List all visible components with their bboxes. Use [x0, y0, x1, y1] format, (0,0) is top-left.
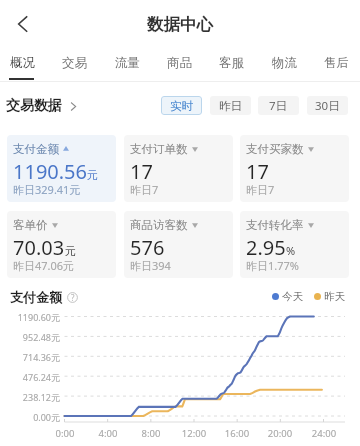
button[interactable]: 支付转化率 — [240, 211, 349, 278]
button[interactable]: 支付金额 — [10, 289, 78, 305]
button[interactable]: 客单价 — [7, 211, 116, 278]
staticText: 昨日47.06元 — [13, 258, 75, 273]
staticText: 0.00元 — [0, 411, 60, 423]
staticText: 2.95 — [246, 234, 286, 261]
staticText: 16:00 — [217, 427, 257, 440]
staticText: 昨日329.41元 — [13, 182, 81, 197]
staticText: 昨天 — [324, 290, 345, 303]
staticText: 售后 — [324, 55, 349, 71]
staticText: 70.03 — [13, 234, 65, 261]
staticText: 24:00 — [304, 427, 344, 440]
button[interactable]: 7日 — [258, 96, 299, 115]
button[interactable]: 支付买家数 — [240, 135, 349, 202]
staticText: 30日 — [315, 98, 340, 114]
staticText: 8:00 — [131, 427, 171, 440]
button[interactable]: 交易数据 — [6, 97, 78, 115]
staticText: 昨日7 — [130, 182, 159, 197]
button[interactable]: 商品访客数 — [124, 211, 233, 278]
button[interactable]: 支付订单数 — [124, 135, 233, 202]
staticText: 952.48元 — [0, 331, 60, 343]
button[interactable]: 售后 — [310, 48, 360, 80]
staticText: 商品 — [167, 55, 192, 71]
staticText: 实时 — [170, 99, 193, 113]
staticText: 客服 — [219, 55, 244, 71]
staticText: 流量 — [115, 55, 140, 71]
button[interactable]: 物流 — [258, 48, 310, 80]
staticText: 0:00 — [45, 427, 85, 440]
staticText: 昨日394 — [130, 258, 171, 273]
staticText: 数据中心 — [147, 14, 213, 35]
staticText: 支付金额 — [13, 142, 59, 156]
staticText: 交易 — [62, 55, 87, 71]
staticText: 支付转化率 — [246, 218, 304, 232]
staticText: 支付订单数 — [130, 142, 188, 156]
staticText: 交易数据 — [6, 97, 62, 115]
staticText: 昨日 — [219, 99, 242, 113]
staticText: 714.36元 — [0, 351, 60, 363]
staticText: % — [286, 243, 296, 258]
staticText: 今天 — [282, 290, 303, 303]
staticText: 7日 — [269, 98, 288, 114]
button[interactable]: 支付金额 — [7, 135, 116, 202]
staticText: 物流 — [272, 55, 297, 71]
button[interactable]: 交易 — [48, 48, 100, 80]
staticText: 17 — [130, 158, 153, 185]
staticText: 476.24元 — [0, 371, 60, 383]
button[interactable]: 客服 — [205, 48, 257, 80]
staticText: 238.12元 — [0, 391, 60, 403]
button[interactable]: 30日 — [307, 96, 348, 115]
staticText: ? — [71, 292, 75, 303]
staticText: 支付金额 — [10, 289, 62, 305]
button[interactable]: 实时 — [161, 96, 202, 115]
staticText: 支付买家数 — [246, 142, 304, 156]
staticText: 昨日1.77% — [246, 258, 299, 273]
staticText: 概况 — [10, 55, 35, 71]
button[interactable]: Back — [5, 6, 41, 42]
staticText: 1190.60元 — [0, 311, 60, 323]
staticText: 元 — [87, 168, 98, 182]
staticText: 商品访客数 — [130, 218, 188, 232]
staticText: 客单价 — [13, 218, 48, 232]
staticText: 元 — [65, 244, 76, 258]
staticText: 1190.56 — [13, 158, 87, 185]
staticText: 4:00 — [88, 427, 128, 440]
staticText: 17 — [246, 158, 269, 185]
button[interactable]: 流量 — [101, 48, 153, 80]
button[interactable]: 概况 — [0, 48, 48, 80]
staticText: 576 — [130, 234, 165, 261]
staticText: 12:00 — [174, 427, 214, 440]
button[interactable]: 商品 — [153, 48, 205, 80]
staticText: 昨日7 — [246, 182, 275, 197]
button[interactable]: 昨日 — [210, 96, 251, 115]
staticText: 20:00 — [260, 427, 300, 440]
